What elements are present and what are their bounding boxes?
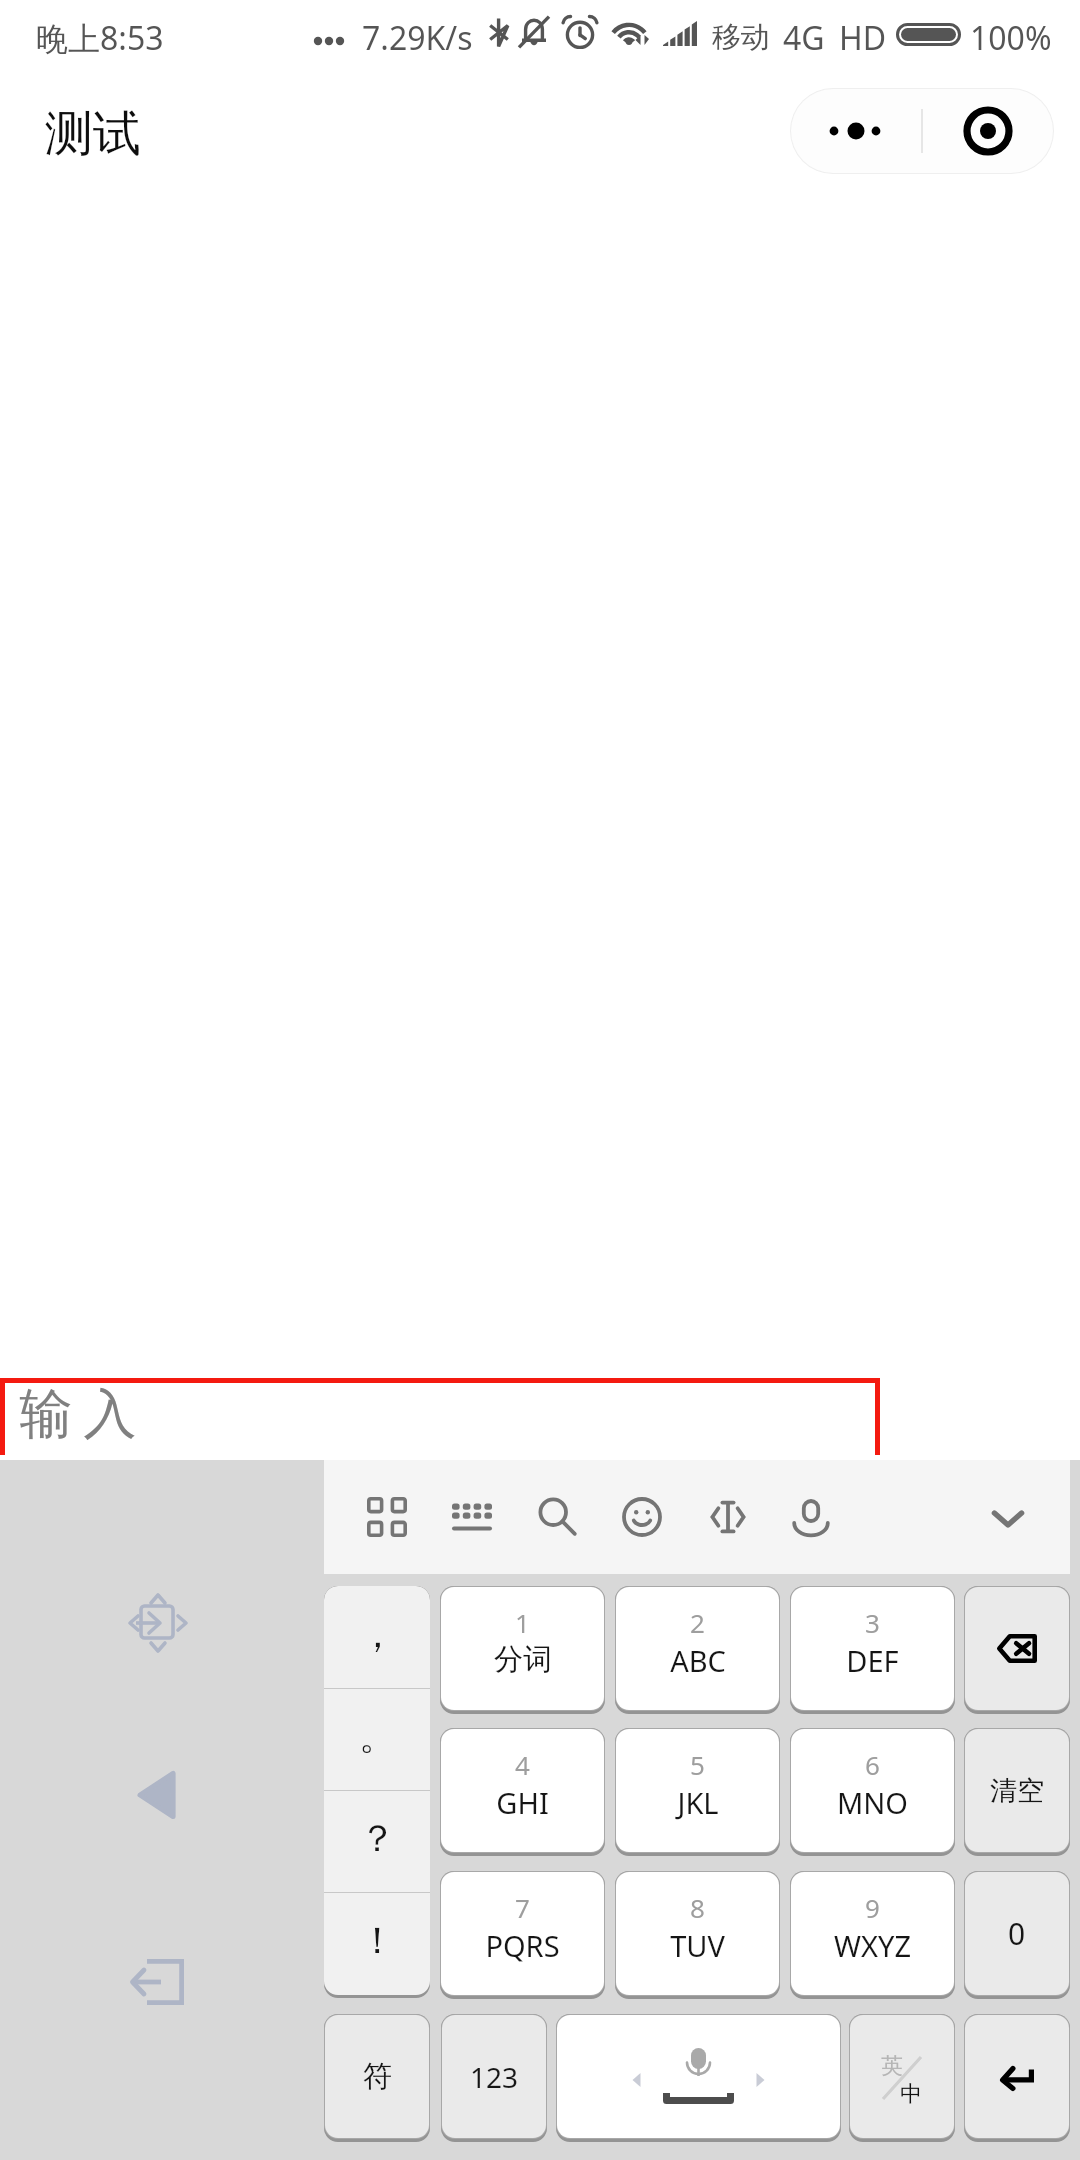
button[interactable]: 8 TUV xyxy=(616,1872,779,1995)
staticText: ， xyxy=(359,1611,396,1658)
staticText: 4 xyxy=(515,1747,530,1782)
button[interactable]: 。 xyxy=(324,1689,430,1791)
staticText: 7.29K/s xyxy=(362,16,473,60)
button[interactable]: Search xyxy=(522,1481,594,1553)
staticText: 3 xyxy=(865,1605,880,1640)
staticText: ？ xyxy=(359,1815,396,1862)
button[interactable]: 2 ABC xyxy=(616,1587,779,1710)
staticText: WXYZ xyxy=(834,1926,911,1965)
staticText: 移动 xyxy=(712,19,770,56)
button[interactable]: 清空 xyxy=(965,1729,1069,1852)
staticText: 4G xyxy=(783,16,825,60)
staticText: 中 xyxy=(900,2080,922,2108)
staticText: 1 xyxy=(515,1605,530,1640)
staticText: 0 xyxy=(1008,1913,1026,1954)
button[interactable]: 英中切换 xyxy=(850,2015,954,2138)
staticText: MNO xyxy=(837,1783,908,1822)
button[interactable]: ？ xyxy=(324,1791,430,1893)
button[interactable]: 0 xyxy=(965,1872,1069,1995)
button[interactable]: ！ xyxy=(324,1893,430,1995)
button[interactable]: 3 DEF xyxy=(791,1587,954,1710)
button[interactable]: Previous page xyxy=(134,1772,180,1818)
button[interactable]: Voice input xyxy=(775,1481,847,1553)
staticText: 清空 xyxy=(990,1774,1044,1808)
staticText: ABC xyxy=(670,1641,726,1680)
staticText: GHI xyxy=(496,1783,549,1822)
staticText: 8 xyxy=(690,1890,705,1925)
staticText: JKL xyxy=(677,1783,719,1822)
staticText: 输入 xyxy=(14,1381,142,1448)
button[interactable]: More options xyxy=(791,89,921,173)
staticText: 测试 xyxy=(45,104,141,164)
button[interactable]: 6 MNO xyxy=(791,1729,954,1852)
staticText: 100% xyxy=(970,16,1052,60)
staticText: 7 xyxy=(515,1890,530,1925)
button[interactable]: Apps xyxy=(351,1481,423,1553)
button[interactable]: Close mini program xyxy=(923,89,1053,173)
button[interactable]: 7 PQRS xyxy=(441,1872,604,1995)
button[interactable]: 1 分词 xyxy=(441,1587,604,1710)
button[interactable]: Collapse keyboard xyxy=(972,1481,1044,1553)
staticText: 晚上8:53 xyxy=(36,16,164,60)
staticText: 。 xyxy=(359,1713,396,1760)
button[interactable]: Hide keyboard xyxy=(130,1959,184,2005)
staticText: PQRS xyxy=(485,1926,560,1965)
button[interactable]: ， xyxy=(324,1586,430,1689)
button[interactable]: Move keyboard xyxy=(127,1592,189,1654)
staticText: TUV xyxy=(670,1926,725,1965)
staticText: HD xyxy=(839,16,887,60)
staticText: 符 xyxy=(363,2058,392,2095)
staticText: 123 xyxy=(470,2058,519,2096)
button[interactable]: 输入 xyxy=(5,1383,875,1455)
button[interactable]: Space xyxy=(557,2015,840,2138)
staticText: 6 xyxy=(865,1747,880,1782)
staticText: 2 xyxy=(690,1605,705,1640)
button[interactable]: Enter xyxy=(965,2015,1069,2138)
button[interactable]: Backspace xyxy=(965,1587,1069,1710)
staticText: DEF xyxy=(846,1641,899,1680)
staticText: 9 xyxy=(865,1890,880,1925)
button[interactable]: 9 WXYZ xyxy=(791,1872,954,1995)
button[interactable]: 符 xyxy=(325,2015,429,2138)
button[interactable]: Keyboard layout xyxy=(436,1481,508,1553)
button[interactable]: 4 GHI xyxy=(441,1729,604,1852)
button[interactable]: 123 xyxy=(442,2015,546,2138)
button[interactable]: Emoji xyxy=(606,1481,678,1553)
button[interactable]: Move cursor xyxy=(692,1481,764,1553)
staticText: 5 xyxy=(690,1747,705,1782)
button[interactable]: 5 JKL xyxy=(616,1729,779,1852)
staticText: 英 xyxy=(881,2052,903,2080)
staticText: 分词 xyxy=(494,1641,552,1678)
staticText: ！ xyxy=(359,1917,396,1964)
